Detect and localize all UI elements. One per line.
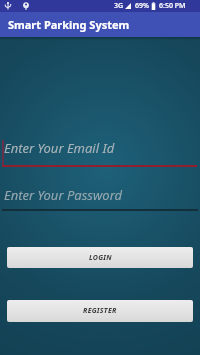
- staticText: Smart Parking System: [8, 17, 130, 32]
- button[interactable]: Enter Your Email Id: [4, 139, 115, 157]
- staticText: 6:50 PM: [159, 1, 186, 11]
- staticText: 69%: [135, 1, 149, 11]
- button[interactable]: LOGIN: [7, 247, 193, 268]
- staticText: REGISTER: [83, 306, 117, 316]
- staticText: LOGIN: [89, 253, 112, 263]
- button[interactable]: Enter Your Password: [4, 186, 123, 204]
- button[interactable]: REGISTER: [7, 300, 193, 322]
- staticText: 3G: [114, 1, 124, 11]
